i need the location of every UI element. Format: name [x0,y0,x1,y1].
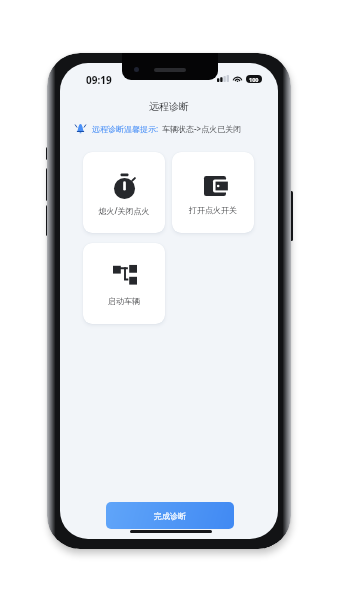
button[interactable]: 启动车辆 [83,243,165,324]
staticText: 打开点火开关 [189,205,237,215]
staticText: 车辆状态->点火已关闭 [162,123,242,134]
button[interactable]: 完成诊断 [106,502,234,529]
staticText: 启动车辆 [108,296,140,306]
button[interactable]: 打开点火开关 [172,152,254,233]
staticText: 熄火/关闭点火 [98,205,150,216]
staticText: 完成诊断 [154,511,186,521]
staticText: 远程诊断 [149,100,189,113]
staticText: 09:19 [86,73,112,87]
staticText: 100 [249,76,259,83]
button[interactable]: 熄火/关闭点火 [83,152,165,233]
staticText: 远程诊断温馨提示: [92,123,159,134]
